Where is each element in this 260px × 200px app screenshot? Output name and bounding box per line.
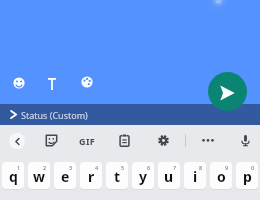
staticText: q [9,167,18,186]
staticText: w [33,167,45,186]
button[interactable]: Stickers [43,132,59,148]
staticText: 8 [199,164,203,171]
button[interactable]: i [184,162,206,189]
staticText: 2 [43,164,47,171]
button[interactable]: Status (Custom) [0,104,260,125]
button[interactable]: Colour palette [78,73,96,91]
button[interactable]: w [28,162,50,189]
staticText: p [243,167,252,186]
button[interactable]: GIF [78,132,97,150]
button[interactable]: p [236,162,258,189]
button[interactable]: Emoji [10,74,28,92]
button[interactable]: Clipboard [116,132,132,148]
button[interactable]: Text format [43,75,61,93]
button[interactable]: Send [208,72,247,111]
button[interactable]: u [158,162,180,189]
staticText: GIF [79,135,96,147]
staticText: 0 [251,164,255,171]
staticText: e [61,167,70,186]
button[interactable]: e [54,162,76,189]
button[interactable]: t [106,162,128,189]
button[interactable]: Settings [155,132,171,148]
staticText: r [88,167,95,186]
staticText: 7 [173,164,177,171]
button[interactable]: r [80,162,102,189]
staticText: y [139,167,147,186]
button[interactable]: q [2,162,24,189]
staticText: i [193,167,198,186]
button[interactable]: y [132,162,154,189]
staticText: 4 [95,164,99,171]
button[interactable]: More options [200,132,216,148]
staticText: 1 [17,164,21,171]
staticText: Status (Custom) [21,109,88,121]
staticText: 5 [121,164,125,171]
staticText: 3 [69,164,73,171]
button[interactable]: Voice input [237,132,253,148]
staticText: 9 [225,164,229,171]
button[interactable]: o [210,162,232,189]
staticText: u [164,167,174,186]
button[interactable]: Back [9,133,25,149]
staticText: t [114,167,121,186]
staticText: o [217,167,226,186]
staticText: 6 [147,164,151,171]
